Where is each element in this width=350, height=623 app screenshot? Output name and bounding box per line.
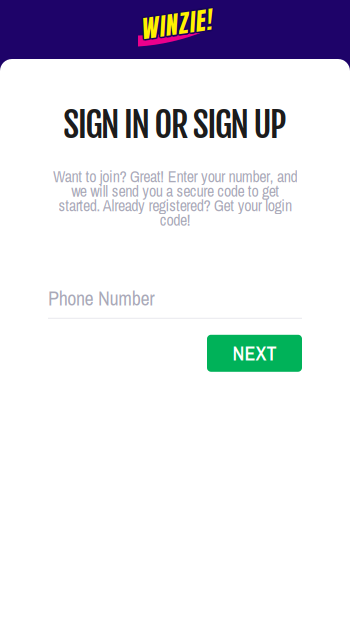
button[interactable]: NEXT — [207, 335, 302, 372]
staticText: Phone Number — [48, 285, 154, 312]
staticText: WINZIE! — [140, 5, 210, 41]
staticText: WINZIE! — [141, 6, 212, 42]
staticText: WINZIE! — [138, 6, 209, 42]
staticText: WINZIE! — [140, 8, 210, 44]
staticText: WINZIE! — [141, 5, 211, 41]
staticText: SIGN IN OR SIGN UP — [63, 103, 287, 147]
staticText: NEXT — [232, 340, 276, 367]
staticText: WINZIE! — [139, 8, 209, 44]
staticText: Want to join? Great! Enter your number, … — [53, 166, 297, 231]
staticText: WINZIE! — [141, 8, 211, 44]
staticText: WINZIE! — [140, 6, 210, 42]
staticText: WINZIE! — [139, 5, 209, 41]
